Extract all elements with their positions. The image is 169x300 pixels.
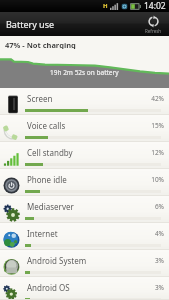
- button[interactable]: Voice calls: [0, 115, 169, 142]
- button[interactable]: Internet: [0, 223, 169, 250]
- button[interactable]: Refresh: [137, 12, 169, 36]
- staticText: 15%: [151, 121, 164, 130]
- staticText: Android System: [27, 255, 87, 266]
- staticText: 4%: [154, 229, 164, 238]
- staticText: Cell standby: [27, 147, 73, 158]
- staticText: H: [103, 2, 108, 10]
- button[interactable]: Mediaserver: [0, 196, 169, 223]
- staticText: Phone idle: [27, 174, 67, 185]
- staticText: 6%: [154, 202, 164, 211]
- button[interactable]: Phone idle: [0, 169, 169, 196]
- staticText: 10%: [151, 175, 164, 184]
- button[interactable]: Cell standby: [0, 142, 169, 169]
- staticText: Internet: [27, 228, 58, 239]
- staticText: Mediaserver: [27, 201, 74, 212]
- staticText: Refresh: [145, 28, 162, 34]
- staticText: 14:02: [144, 0, 166, 12]
- staticText: 42%: [151, 94, 164, 103]
- button[interactable]: Android System: [0, 250, 169, 277]
- button[interactable]: Android OS: [0, 277, 169, 300]
- button[interactable]: Screen: [0, 88, 169, 115]
- staticText: 47% - Not charging: [5, 40, 76, 49]
- staticText: Android OS: [27, 282, 70, 293]
- staticText: 3%: [154, 283, 164, 292]
- staticText: Voice calls: [27, 120, 66, 131]
- staticText: 12%: [151, 148, 164, 157]
- staticText: 3%: [154, 256, 164, 265]
- staticText: Screen: [27, 93, 53, 104]
- staticText: 19h 2m 52s on battery: [50, 68, 119, 77]
- staticText: Battery use: [6, 18, 55, 30]
